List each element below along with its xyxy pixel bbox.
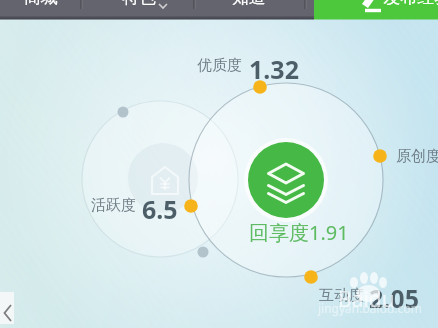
staticText: 活跃度 [91,196,136,215]
staticText: 特色 [122,0,156,7]
button[interactable]: 6.5 [142,192,178,226]
button[interactable]: 活跃度 [91,196,136,215]
button[interactable]: 回享度1.91 [249,219,349,246]
button[interactable]: Previous page [0,292,14,324]
staticText: 6.5 [142,192,178,226]
staticText: 2.05 [369,281,419,315]
button[interactable]: 知道 [216,0,250,2]
staticText: 1.32 [249,52,299,86]
staticText: jingyan.baidu.com [318,300,422,316]
button[interactable]: 特色 [106,0,152,2]
staticText: 知道 [232,0,266,7]
staticText: 原创度 [396,147,438,166]
button[interactable]: 2.05 [369,281,419,315]
button[interactable]: 发布经验 [314,0,438,20]
button[interactable]: 1.32 [249,52,299,86]
button[interactable]: 优质度 [197,56,242,75]
staticText: 优质度 [197,56,242,75]
button[interactable]: 互动度 [319,286,364,305]
staticText: 互动度 [319,286,364,305]
button[interactable]: 原创度 [396,147,438,166]
button[interactable]: 商城 [8,0,42,2]
staticText: 发布经验 [379,0,438,5]
staticText: 回享度1.91 [249,219,349,246]
staticText: Baidu [338,285,395,314]
staticText: 商城 [24,0,58,7]
